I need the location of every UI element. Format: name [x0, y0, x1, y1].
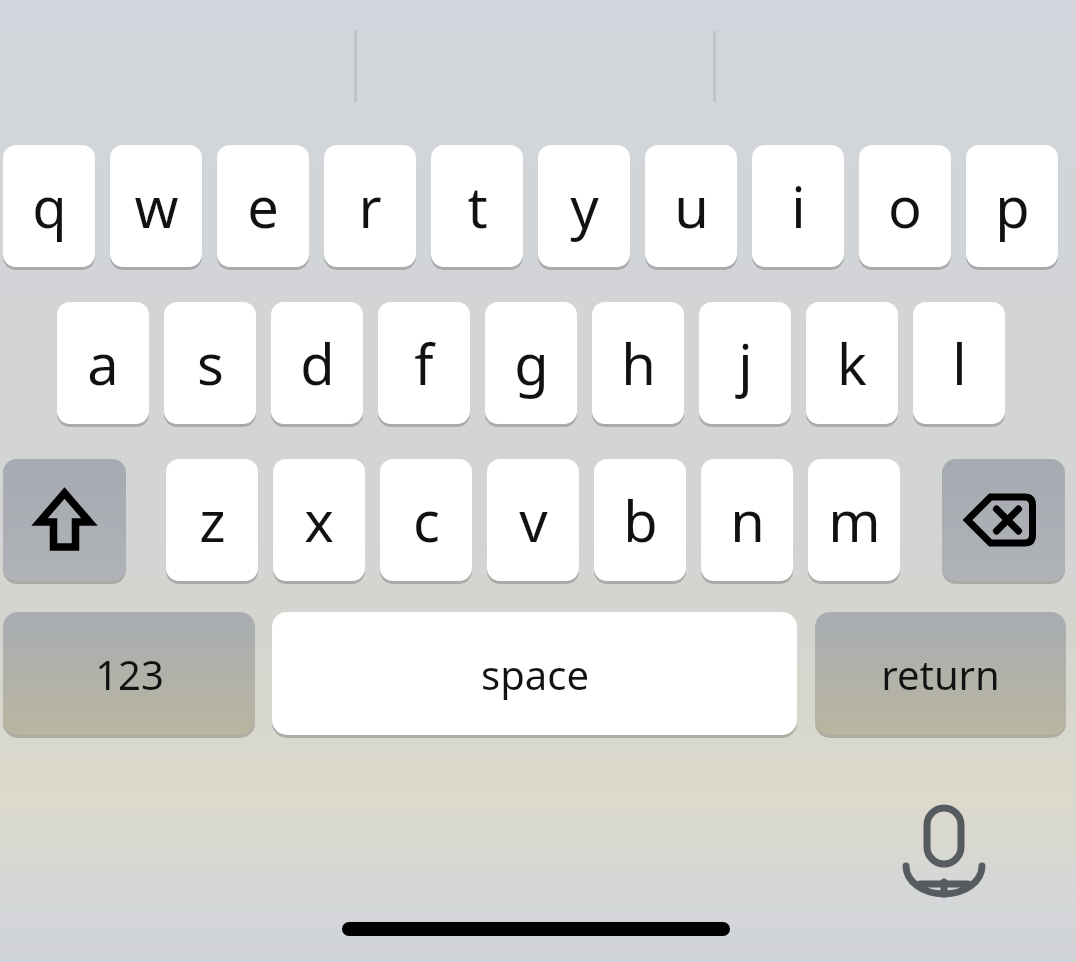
staticText: i	[791, 168, 806, 244]
staticText: a	[87, 325, 119, 401]
button[interactable]: i	[752, 145, 844, 267]
button[interactable]: return	[815, 612, 1066, 735]
button[interactable]: o	[859, 145, 951, 267]
staticText: x	[304, 482, 334, 558]
staticText: o	[888, 168, 922, 244]
button[interactable]: j	[699, 302, 791, 424]
button[interactable]: l	[913, 302, 1005, 424]
staticText: v	[519, 482, 548, 558]
button[interactable]: v	[487, 459, 579, 581]
staticText: m	[828, 482, 881, 558]
staticText: y	[570, 168, 599, 244]
staticText: space	[481, 647, 589, 701]
button[interactable]: y	[538, 145, 630, 267]
staticText: z	[199, 482, 226, 558]
button[interactable]: e	[217, 145, 309, 267]
staticText: f	[414, 325, 434, 401]
button[interactable]: u	[645, 145, 737, 267]
button[interactable]: k	[806, 302, 898, 424]
staticText: k	[837, 325, 867, 401]
staticText: s	[197, 325, 224, 401]
button[interactable]: b	[594, 459, 686, 581]
button[interactable]: n	[701, 459, 793, 581]
staticText: w	[134, 168, 179, 244]
button[interactable]: c	[380, 459, 472, 581]
staticText: u	[674, 168, 709, 244]
button[interactable]: 123	[3, 612, 255, 735]
button[interactable]: m	[808, 459, 900, 581]
button[interactable]: q	[3, 145, 95, 267]
button[interactable]: p	[966, 145, 1058, 267]
button[interactable]: r	[324, 145, 416, 267]
button[interactable]: Shift	[3, 459, 126, 581]
button[interactable]: a	[57, 302, 149, 424]
staticText: g	[514, 325, 549, 401]
button[interactable]: space	[272, 612, 797, 735]
button[interactable]: z	[166, 459, 258, 581]
staticText: h	[621, 325, 656, 401]
button[interactable]: g	[485, 302, 577, 424]
button[interactable]: w	[110, 145, 202, 267]
staticText: 123	[95, 647, 164, 701]
staticText: b	[623, 482, 658, 558]
button[interactable]: s	[164, 302, 256, 424]
button[interactable]: x	[273, 459, 365, 581]
button[interactable]: Backspace	[942, 459, 1065, 581]
button[interactable]: Dictation	[899, 798, 989, 894]
staticText: n	[730, 482, 765, 558]
button[interactable]: d	[271, 302, 363, 424]
staticText: q	[32, 168, 67, 244]
staticText: e	[247, 168, 279, 244]
staticText: r	[358, 168, 382, 244]
staticText: p	[995, 168, 1030, 244]
staticText: l	[952, 325, 967, 401]
button[interactable]: f	[378, 302, 470, 424]
staticText: j	[738, 325, 753, 401]
staticText: d	[300, 325, 335, 401]
staticText: return	[881, 647, 1000, 701]
staticText: t	[467, 168, 488, 244]
button[interactable]: t	[431, 145, 523, 267]
button[interactable]: h	[592, 302, 684, 424]
staticText: c	[413, 482, 440, 558]
